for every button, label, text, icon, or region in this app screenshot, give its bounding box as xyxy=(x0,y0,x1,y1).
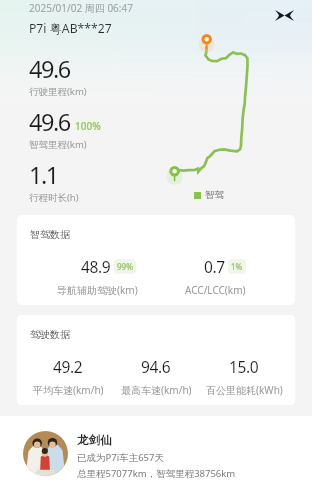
staticText: 48.9 xyxy=(81,256,111,277)
staticText: 导航辅助驾驶(km) xyxy=(57,283,138,297)
staticText: 49.2 xyxy=(53,356,83,377)
staticText: ACC/LCC(km) xyxy=(185,283,246,297)
staticText: 94.6 xyxy=(141,356,171,377)
staticText: 1.1 xyxy=(29,159,58,191)
staticText: 100% xyxy=(75,119,101,133)
staticText: 行驶里程(km) xyxy=(29,85,87,98)
staticText: 龙剑仙 xyxy=(77,433,112,447)
staticText: 智驾数据 xyxy=(30,228,70,241)
staticText: 0.7 xyxy=(204,256,225,277)
staticText: 驾驶数据 xyxy=(30,328,70,341)
staticText: 49.6 xyxy=(29,106,70,138)
staticText: 49.6 xyxy=(29,53,70,85)
button[interactable]: XPeng logo xyxy=(270,4,298,26)
staticText: 百公里能耗(kWh) xyxy=(206,383,283,397)
staticText: P7i 粤AB***27 xyxy=(29,20,112,37)
button[interactable]: 龙剑仙 xyxy=(0,416,312,495)
button[interactable]: 驾驶数据 xyxy=(17,315,295,405)
staticText: 最高车速(km/h) xyxy=(121,383,192,397)
staticText: 已成为P7i车主657天 xyxy=(77,451,164,464)
button[interactable]: 智驾 xyxy=(190,186,228,204)
staticText: 智驾 xyxy=(205,189,224,201)
staticText: 平均车速(km/h) xyxy=(33,383,104,397)
staticText: 智驾里程(km) xyxy=(29,138,87,151)
staticText: 15.0 xyxy=(229,356,259,377)
staticText: 99% xyxy=(117,261,133,272)
staticText: 1% xyxy=(231,261,243,272)
staticText: 总里程57077km，智驾里程38756km xyxy=(77,467,236,480)
staticText: 行程时长(h) xyxy=(29,191,79,204)
staticText: 2025/01/02 周四 06:47 xyxy=(29,1,133,15)
button[interactable]: 智驾数据 xyxy=(17,215,295,305)
